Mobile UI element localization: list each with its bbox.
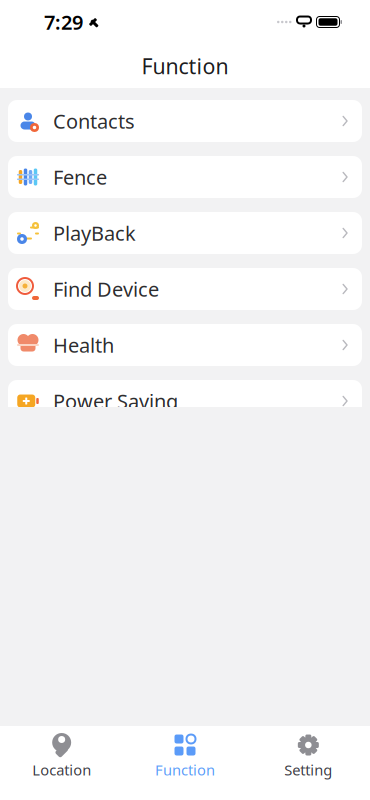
button[interactable]: Fence (8, 156, 362, 198)
staticText: Fence (53, 164, 107, 190)
staticText: PlayBack (53, 220, 136, 246)
staticText: Power Saving (53, 388, 178, 414)
button[interactable]: Power Saving (8, 380, 362, 422)
staticText: 7:29 (44, 9, 83, 35)
button[interactable]: PlayBack (8, 212, 362, 254)
button[interactable]: Location (0, 726, 123, 779)
staticText: Function (155, 760, 215, 779)
button[interactable]: Find Device (8, 268, 362, 310)
button[interactable]: Function (123, 726, 247, 779)
button[interactable]: Health (8, 324, 362, 366)
staticText: Contacts (53, 108, 135, 134)
button[interactable]: Contacts (8, 100, 362, 142)
staticText: Location (32, 760, 91, 779)
button[interactable]: Setting (247, 726, 370, 779)
staticText: Setting (284, 760, 332, 779)
staticText: Health (53, 332, 114, 358)
staticText: Function (141, 52, 228, 80)
staticText: Find Device (53, 276, 159, 302)
